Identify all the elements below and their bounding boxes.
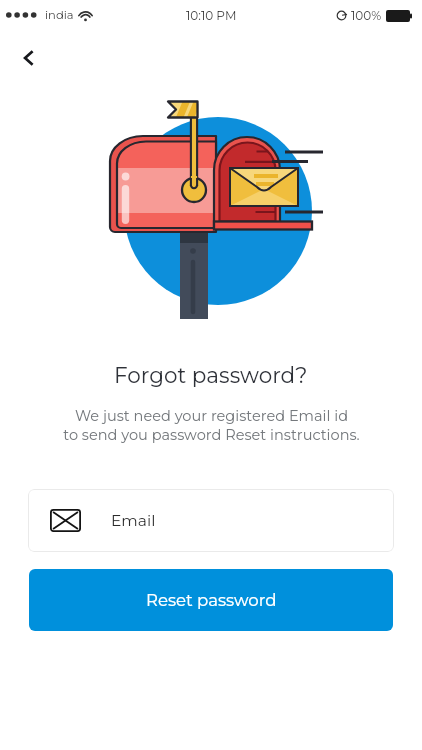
button[interactable]: Email <box>28 489 394 552</box>
staticText: Forgot password? <box>114 362 308 388</box>
staticText: Reset password <box>146 590 277 610</box>
staticText: india <box>45 8 74 22</box>
button[interactable]: Back <box>12 41 46 75</box>
staticText: 100% <box>351 8 382 23</box>
staticText: 10:10 PM <box>186 8 237 23</box>
staticText: We just need your registered Email id to… <box>63 407 360 443</box>
staticText: Email <box>111 511 156 530</box>
button[interactable]: Reset password <box>29 569 393 631</box>
